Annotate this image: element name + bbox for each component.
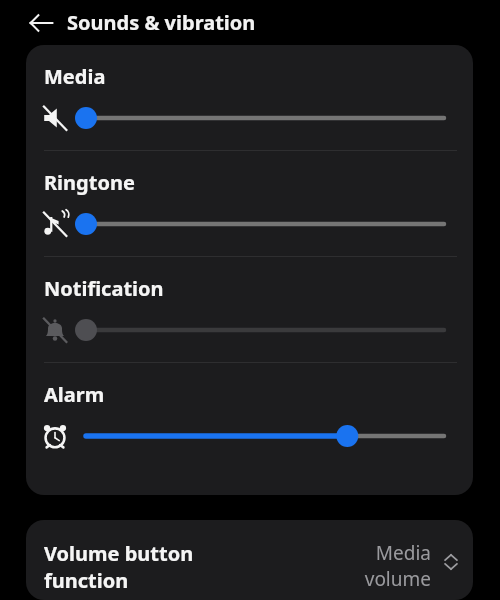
staticText: Sounds & vibration xyxy=(67,9,256,36)
button[interactable]: Back xyxy=(18,0,64,45)
button[interactable]: Volume button function xyxy=(26,520,473,600)
staticText: Notification xyxy=(44,275,164,302)
button[interactable]: Notification xyxy=(26,257,473,362)
staticText: Media xyxy=(44,63,106,90)
staticText: Alarm xyxy=(44,381,105,408)
staticText: Media volume xyxy=(364,540,431,592)
staticText: Ringtone xyxy=(44,169,135,196)
button[interactable]: Alarm xyxy=(26,363,473,468)
staticText: Volume button function xyxy=(44,540,194,594)
button[interactable]: Media xyxy=(26,45,473,150)
other: Change xyxy=(439,550,463,574)
button[interactable]: Ringtone xyxy=(26,151,473,256)
